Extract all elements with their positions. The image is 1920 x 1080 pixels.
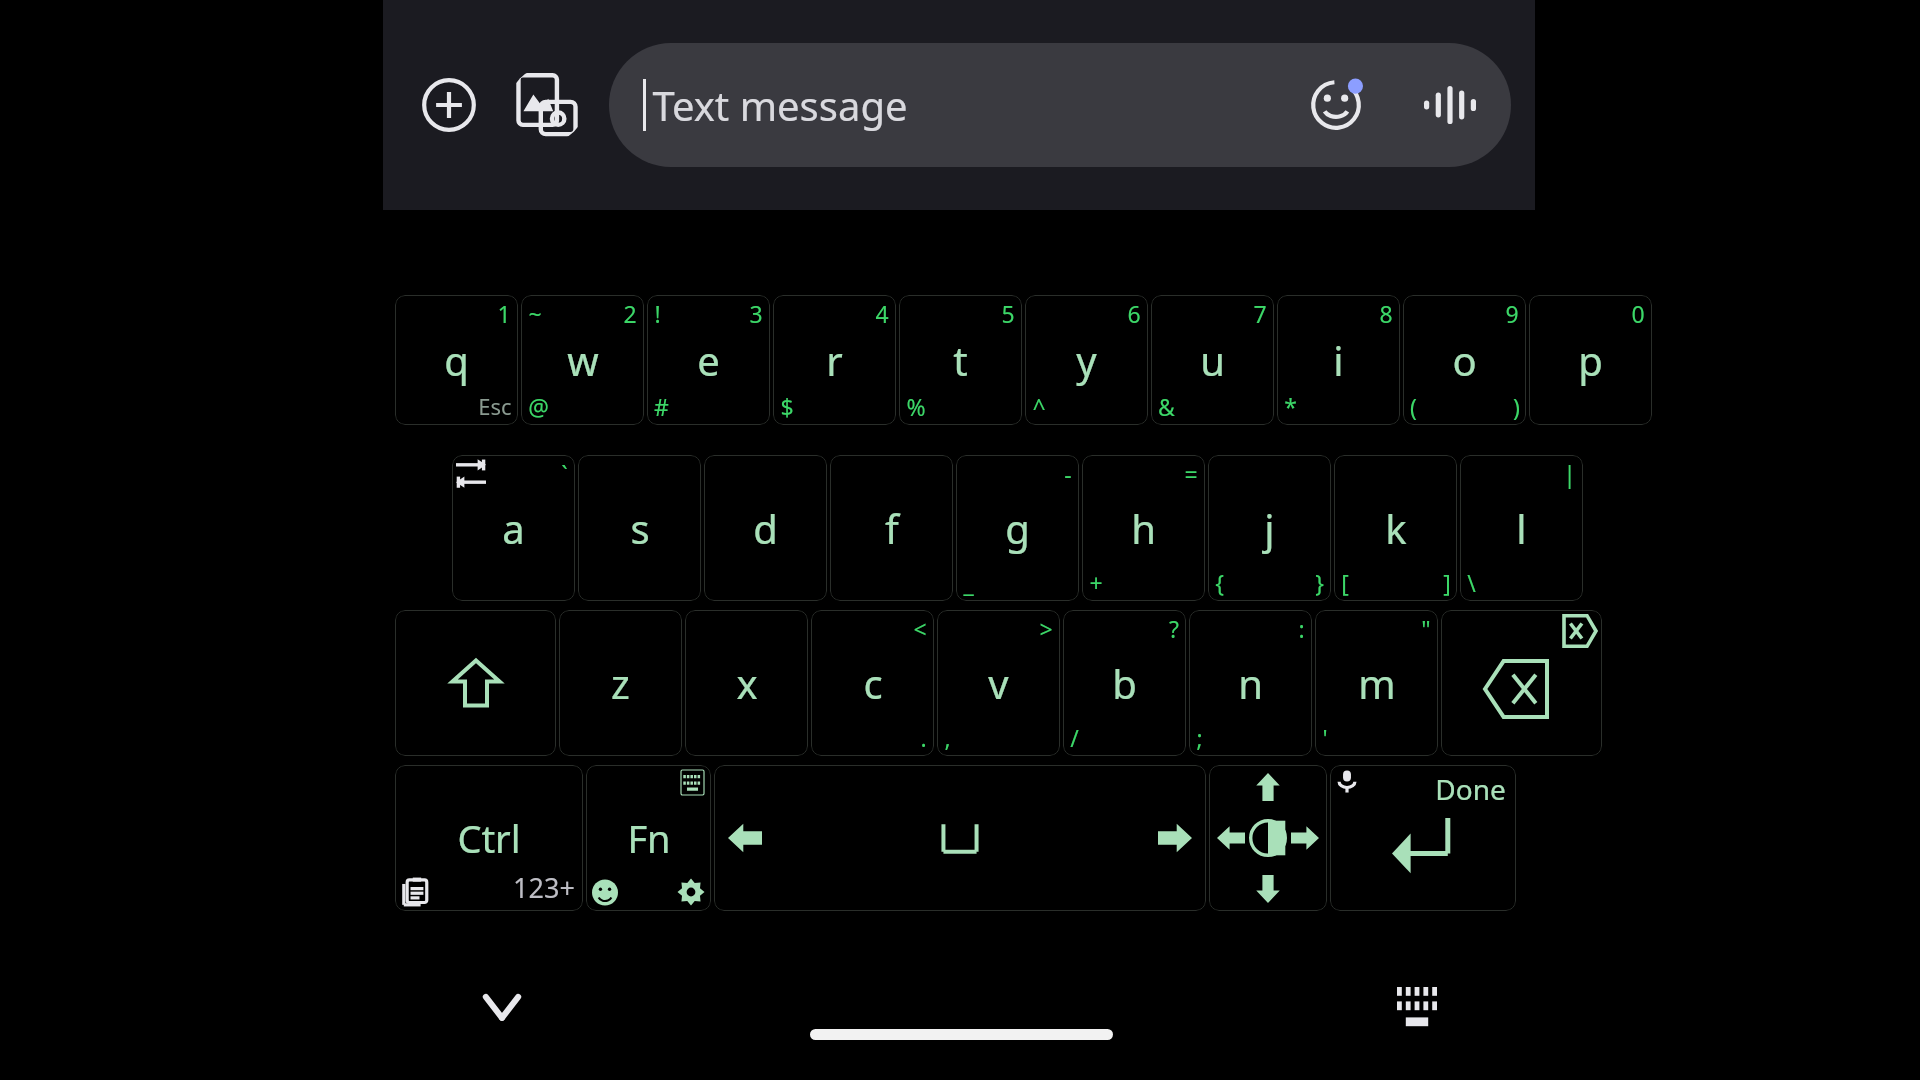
staticText: e: [697, 333, 720, 387]
staticText: b: [1112, 656, 1137, 710]
staticText: >: [1039, 613, 1053, 644]
button[interactable]: u: [1151, 295, 1274, 425]
button[interactable]: b: [1063, 610, 1186, 756]
button[interactable]: x: [685, 610, 808, 756]
staticText: i: [1333, 333, 1344, 387]
button[interactable]: y: [1025, 295, 1148, 425]
staticText: 4: [875, 298, 889, 329]
staticText: l: [1516, 501, 1527, 555]
staticText: n: [1238, 656, 1263, 710]
button[interactable]: i: [1277, 295, 1400, 425]
button[interactable]: n: [1189, 610, 1312, 756]
button[interactable]: Fn: [586, 765, 711, 911]
button[interactable]: f: [830, 455, 953, 601]
button[interactable]: [1330, 765, 1516, 911]
staticText: y: [1076, 333, 1097, 387]
staticText: t: [953, 333, 968, 387]
button[interactable]: r: [773, 295, 896, 425]
staticText: Ctrl: [457, 812, 521, 864]
button[interactable]: z: [559, 610, 682, 756]
staticText: d: [753, 501, 778, 555]
staticText: (: [1410, 391, 1417, 422]
staticText: ): [1513, 391, 1520, 422]
staticText: k: [1385, 501, 1407, 555]
staticText: _: [963, 567, 974, 598]
staticText: ;: [1196, 722, 1203, 753]
staticText: j: [1264, 501, 1275, 555]
staticText: q: [444, 333, 469, 387]
staticText: 8: [1379, 298, 1393, 329]
button[interactable]: j: [1208, 455, 1331, 601]
staticText: |: [1563, 458, 1576, 489]
staticText: x: [736, 656, 758, 710]
staticText: {: [1215, 567, 1224, 598]
staticText: $: [780, 391, 794, 422]
button[interactable]: l: [1460, 455, 1583, 601]
button[interactable]: p: [1529, 295, 1652, 425]
staticText: +: [1089, 567, 1103, 598]
button[interactable]: Emoji: [1301, 70, 1371, 140]
button[interactable]: g: [956, 455, 1079, 601]
button[interactable]: s: [578, 455, 701, 601]
staticText: p: [1578, 333, 1603, 387]
staticText: %: [906, 391, 926, 422]
button[interactable]: Ctrl: [395, 765, 583, 911]
staticText: v: [988, 656, 1009, 710]
staticText: ^: [1032, 391, 1046, 422]
staticText: #: [654, 391, 669, 422]
button[interactable]: o: [1403, 295, 1526, 425]
staticText: r: [826, 333, 843, 387]
staticText: }: [1315, 567, 1324, 598]
staticText: 1: [497, 298, 511, 329]
staticText: Text message: [652, 78, 908, 132]
button[interactable]: v: [937, 610, 1060, 756]
button[interactable]: c: [811, 610, 934, 756]
button[interactable]: q: [395, 295, 518, 425]
button[interactable]: Send photo: [509, 67, 585, 143]
staticText: <: [913, 613, 927, 644]
button[interactable]: Text message: [609, 43, 1511, 167]
button[interactable]: [1441, 610, 1602, 756]
button[interactable]: m: [1315, 610, 1438, 756]
staticText: o: [1452, 333, 1477, 387]
button[interactable]: [714, 765, 1206, 911]
staticText: Fn: [627, 812, 671, 864]
staticText: ,: [944, 722, 951, 753]
staticText: *: [1284, 391, 1297, 422]
staticText: g: [1005, 501, 1030, 555]
button[interactable]: t: [899, 295, 1022, 425]
staticText: 123+: [513, 869, 575, 906]
staticText: ]: [1443, 567, 1451, 598]
staticText: a: [502, 501, 525, 555]
staticText: ": [1421, 613, 1431, 644]
staticText: u: [1200, 333, 1225, 387]
staticText: w: [567, 333, 599, 387]
button[interactable]: k: [1334, 455, 1457, 601]
button[interactable]: [395, 610, 556, 756]
staticText: f: [885, 501, 899, 555]
staticText: /: [1070, 722, 1079, 753]
staticText: 6: [1127, 298, 1141, 329]
staticText: m: [1358, 656, 1396, 710]
staticText: ': [1322, 722, 1328, 753]
button[interactable]: [1209, 765, 1327, 911]
staticText: 3: [749, 298, 763, 329]
staticText: .: [920, 722, 927, 753]
staticText: z: [611, 656, 630, 710]
staticText: @: [528, 391, 549, 422]
button[interactable]: Add attachment: [411, 67, 487, 143]
staticText: 5: [1001, 298, 1015, 329]
button[interactable]: Switch keyboard: [1385, 975, 1449, 1039]
button[interactable]: w: [521, 295, 644, 425]
button[interactable]: d: [704, 455, 827, 601]
staticText: 2: [623, 298, 637, 329]
staticText: h: [1131, 501, 1156, 555]
staticText: s: [630, 501, 650, 555]
button[interactable]: h: [1082, 455, 1205, 601]
button[interactable]: e: [647, 295, 770, 425]
button[interactable]: Hide keyboard: [470, 975, 534, 1039]
staticText: :: [1298, 613, 1305, 644]
button[interactable]: Voice message: [1415, 70, 1485, 140]
button[interactable]: a: [452, 455, 575, 601]
staticText: 7: [1253, 298, 1267, 329]
